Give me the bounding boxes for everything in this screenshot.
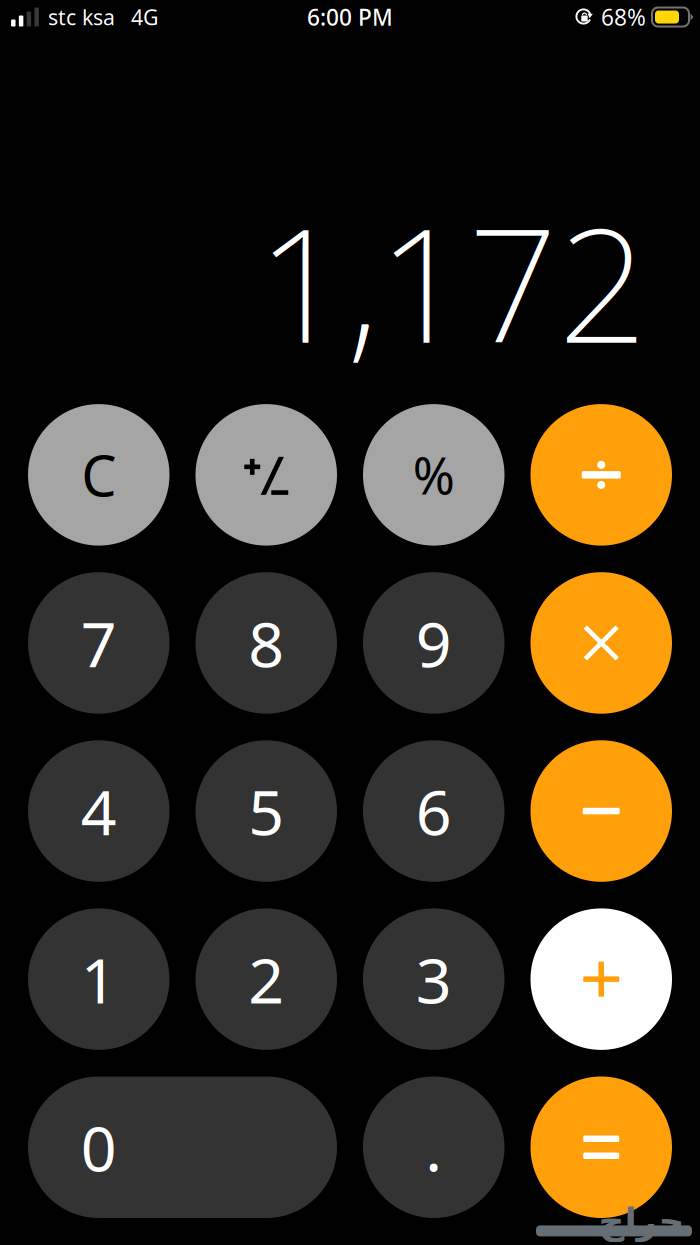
- staticText: 7: [81, 601, 117, 684]
- staticText: 4: [81, 769, 117, 853]
- staticText: 6: [416, 769, 452, 853]
- staticText: 6:00 PM: [307, 2, 393, 32]
- button[interactable]: Plus: [530, 908, 672, 1050]
- button[interactable]: 6: [363, 740, 504, 882]
- button[interactable]: 9: [363, 572, 504, 714]
- button[interactable]: 3: [363, 908, 504, 1050]
- staticText: C: [81, 438, 116, 512]
- staticText: حراج: [598, 1201, 684, 1241]
- staticText: 9: [416, 601, 452, 684]
- staticText: stc ksa: [48, 3, 115, 31]
- staticText: 1,172: [257, 177, 648, 386]
- staticText: %: [413, 441, 455, 508]
- button[interactable]: Divide: [530, 404, 672, 546]
- button[interactable]: 1: [28, 908, 169, 1050]
- button[interactable]: 5: [195, 740, 337, 882]
- button[interactable]: 0: [28, 1076, 337, 1218]
- button[interactable]: 8: [195, 572, 337, 714]
- button[interactable]: Toggle sign: [195, 404, 337, 546]
- staticText: 0: [81, 1106, 117, 1189]
- staticText: 3: [416, 937, 452, 1021]
- staticText: 68%: [601, 2, 646, 32]
- staticText: 5: [248, 769, 284, 853]
- staticText: .: [425, 1106, 442, 1189]
- button[interactable]: .: [363, 1076, 504, 1218]
- staticText: 1: [81, 937, 117, 1021]
- staticText: 4G: [131, 3, 159, 31]
- button[interactable]: 4: [28, 740, 169, 882]
- button[interactable]: Multiply: [530, 572, 672, 714]
- staticText: 2: [248, 937, 284, 1021]
- button[interactable]: %: [363, 404, 504, 546]
- button[interactable]: Equals: [530, 1076, 672, 1218]
- button[interactable]: Minus: [530, 740, 672, 882]
- button[interactable]: 2: [195, 908, 337, 1050]
- button[interactable]: C: [28, 404, 169, 546]
- button[interactable]: 7: [28, 572, 169, 714]
- staticText: 8: [248, 601, 284, 684]
